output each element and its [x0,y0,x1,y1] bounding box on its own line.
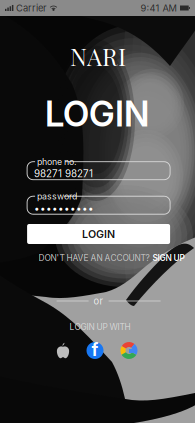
staticText: LOGIN [45,93,149,135]
staticText: 9:41 AM [140,2,176,14]
staticText: SIGN UP [152,253,184,263]
staticText: Carrier [16,2,47,14]
staticText: 98271 98271 [34,168,93,180]
button[interactable]: DON'T HAVE AN ACCOUNT? [38,253,184,263]
staticText: NARI [70,40,126,72]
staticText: password [37,191,77,201]
button[interactable]: LOGIN [27,224,170,244]
staticText: •••••••••• [34,202,94,214]
staticText: DON'T HAVE AN ACCOUNT? [38,253,149,263]
staticText: phone no. [37,156,77,167]
button[interactable]: Sign in with Facebook [86,342,103,359]
staticText: or [94,295,104,307]
staticText: f [91,339,98,360]
button[interactable]: Sign in with Apple [56,343,69,358]
staticText: LOGIN [82,227,115,240]
button[interactable]: Sign in with Google [120,342,137,359]
staticText: LOGIN UP WITH [69,322,130,332]
